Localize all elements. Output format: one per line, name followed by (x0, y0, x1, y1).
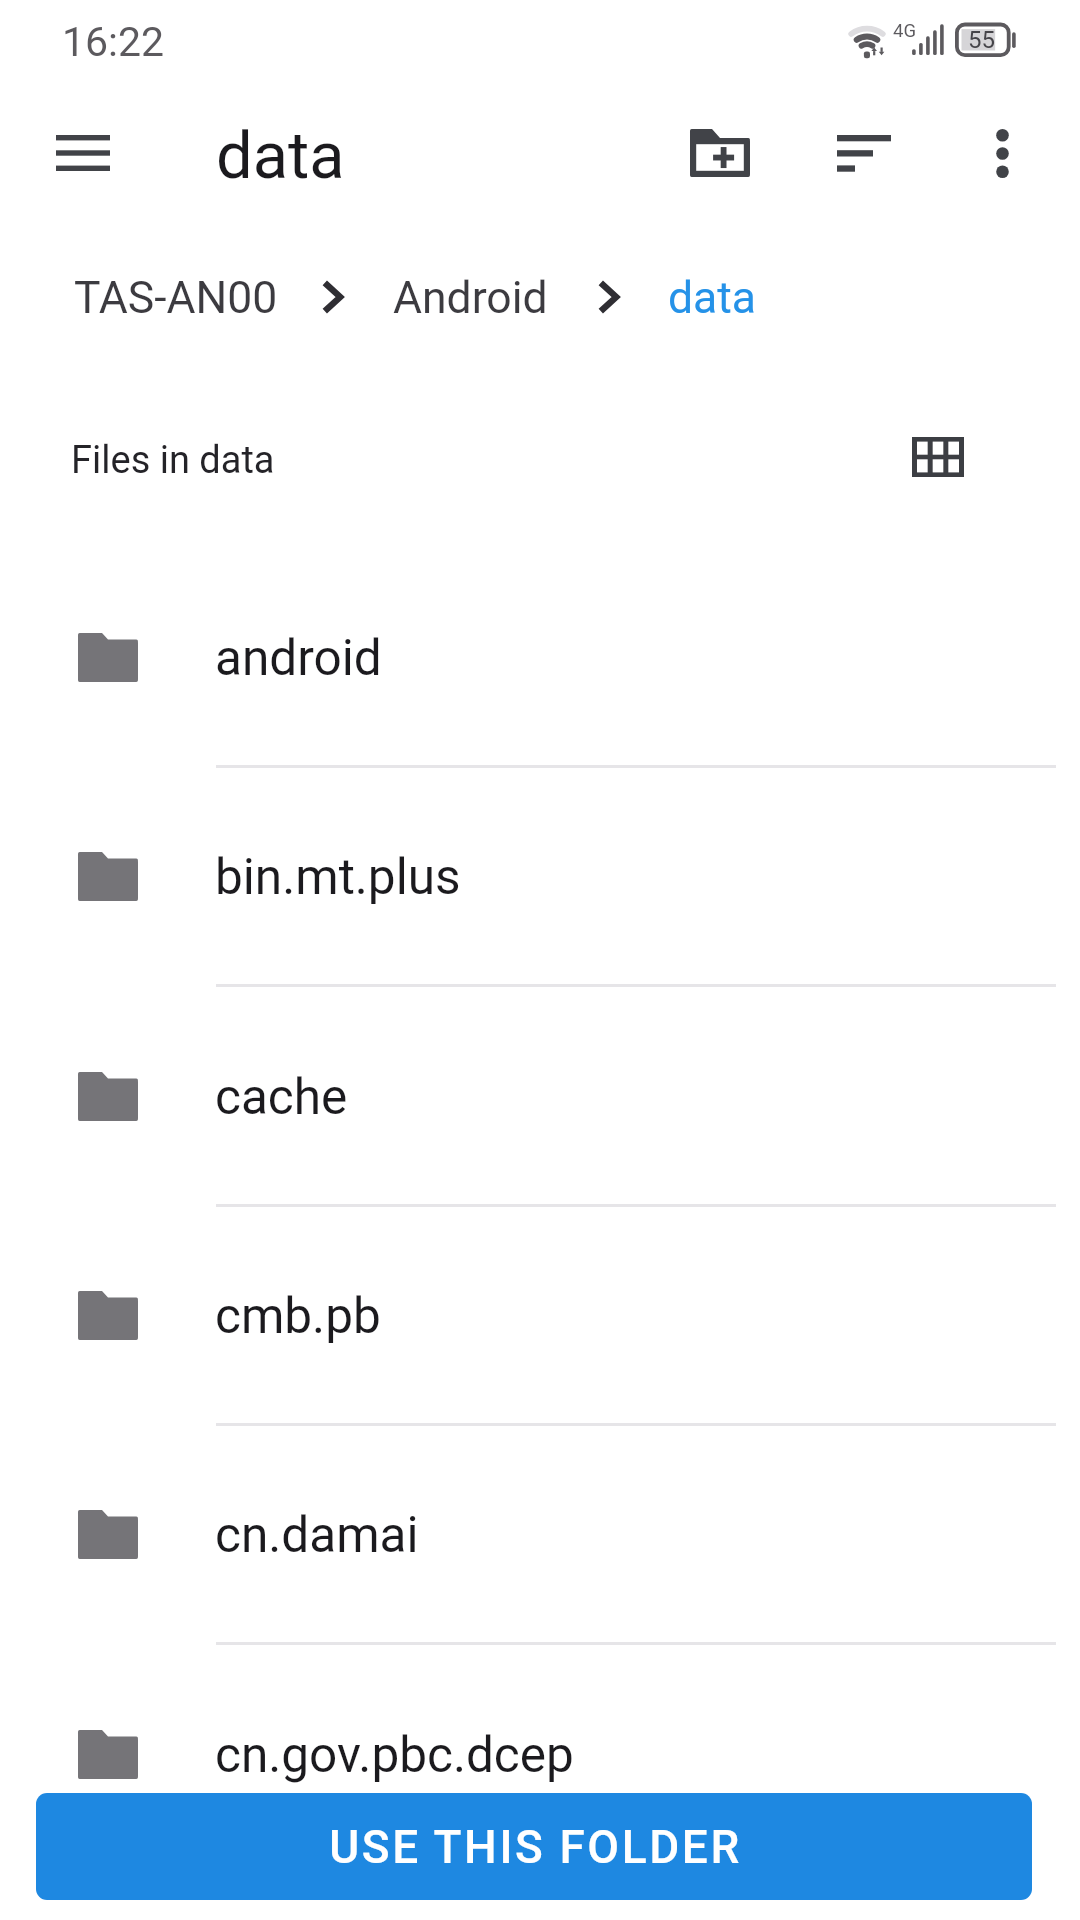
button[interactable]: New folder (663, 101, 777, 205)
button[interactable]: TAS-AN00 (60, 256, 264, 338)
button[interactable]: cache (0, 987, 1080, 1206)
button[interactable]: data (654, 256, 743, 338)
staticText: 4G (893, 20, 916, 42)
button[interactable]: USE THIS FOLDER (36, 1793, 1032, 1900)
staticText: USE THIS FOLDER (329, 1820, 742, 1874)
staticText: bin.mt.plus (215, 848, 461, 906)
staticText: cn.gov.pbc.dcep (215, 1726, 574, 1784)
staticText: cmb.pb (215, 1287, 381, 1345)
staticText: 55 (968, 26, 995, 54)
staticText: cn.damai (215, 1506, 419, 1564)
button[interactable]: Android (379, 256, 534, 338)
button[interactable]: Sort (807, 101, 921, 205)
staticText: data (668, 272, 757, 324)
button[interactable]: bin.mt.plus (0, 767, 1080, 986)
button[interactable]: More options (945, 101, 1059, 205)
staticText: 16:22 (62, 18, 165, 66)
staticText: android (215, 629, 382, 687)
button[interactable]: Switch to grid view (886, 410, 990, 503)
staticText: Android (393, 272, 548, 324)
button[interactable]: cn.damai (0, 1425, 1080, 1644)
button[interactable]: cn.gov.pbc.dcep (0, 1645, 1080, 1864)
button[interactable]: android (0, 548, 1080, 767)
button[interactable]: Navigation menu (26, 101, 140, 205)
button[interactable]: cmb.pb (0, 1206, 1080, 1425)
staticText: Files in data (71, 438, 275, 483)
staticText: cache (215, 1068, 348, 1126)
staticText: data (216, 118, 345, 194)
staticText: TAS-AN00 (74, 272, 278, 324)
